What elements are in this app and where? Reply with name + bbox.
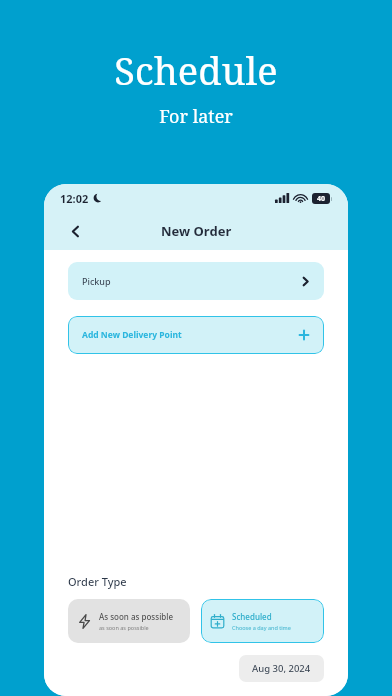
staticText: Schedule <box>114 44 278 96</box>
button[interactable]: As soon as possible <box>68 599 190 643</box>
button[interactable]: Pickup <box>68 262 324 300</box>
staticText: For later <box>159 104 233 129</box>
button[interactable]: Aug 30, 2024 <box>239 655 324 682</box>
staticText: Scheduled <box>232 611 272 622</box>
button[interactable]: Scheduled <box>201 599 324 643</box>
staticText: As soon as possible <box>99 611 174 622</box>
staticText: New Order <box>161 222 232 240</box>
button[interactable]: Add New Delivery Point <box>68 316 324 354</box>
staticText: Add New Delivery Point <box>82 329 182 341</box>
staticText: Order Type <box>68 574 127 589</box>
staticText: Choose a day and time <box>232 624 291 631</box>
staticText: 12:02 <box>60 191 89 206</box>
button[interactable]: Back <box>58 214 92 248</box>
staticText: 40 <box>317 194 326 204</box>
staticText: as soon as possible <box>99 624 149 631</box>
staticText: Pickup <box>82 275 111 287</box>
staticText: Aug 30, 2024 <box>252 662 311 675</box>
